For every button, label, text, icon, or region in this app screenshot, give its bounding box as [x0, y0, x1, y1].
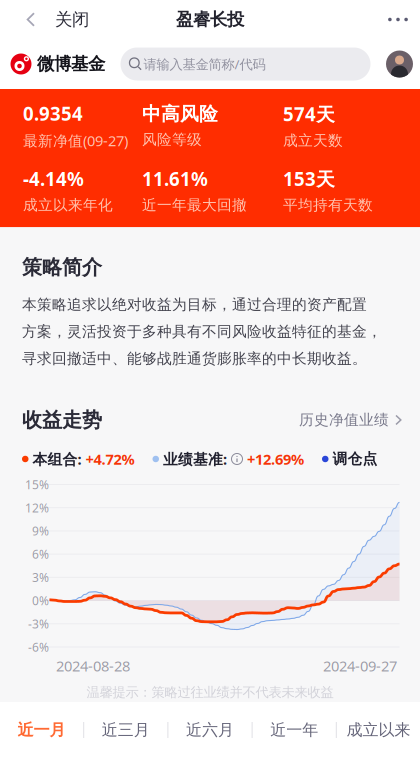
staticText: 寻求回撤适中、能够战胜通货膨胀率的中长期收益。	[22, 350, 367, 368]
staticText: -3%	[28, 616, 49, 632]
staticText: 9%	[32, 523, 49, 539]
staticText: 成立天数	[283, 131, 343, 149]
staticText: 本策略追求以绝对收益为目标，通过合理的资产配置	[22, 296, 367, 314]
staticText: 策略简介	[22, 255, 102, 280]
button[interactable]: 近六月	[168, 702, 252, 758]
button[interactable]: 请输入基金简称/代码	[120, 47, 370, 80]
staticText: 历史净值业绩	[299, 411, 389, 429]
staticText: 2024-09-27	[323, 656, 397, 675]
staticText: 0.9354	[23, 101, 83, 126]
staticText: 近一年	[270, 720, 318, 740]
staticText: 温馨提示：策略过往业绩并不代表未来收益	[86, 684, 333, 700]
staticText: 574天	[283, 102, 335, 126]
staticText: 成立以来	[346, 720, 410, 740]
button[interactable]: 成立以来	[337, 702, 420, 758]
staticText: 关闭	[55, 9, 89, 30]
staticText: 平均持有天数	[283, 196, 373, 214]
staticText: 0%	[32, 593, 49, 608]
staticText: 153天	[283, 166, 335, 191]
staticText: 6%	[32, 546, 49, 562]
staticText: 15%	[25, 476, 49, 492]
staticText: 2024-08-28	[56, 656, 130, 675]
staticText: 请输入基金简称/代码	[143, 55, 265, 73]
button[interactable]: 近一月	[0, 702, 83, 758]
staticText: 近三月	[102, 720, 150, 740]
staticText: 成立以来年化	[23, 196, 113, 214]
staticText: 近一年最大回撤	[142, 196, 247, 214]
staticText: +4.72%	[85, 449, 134, 469]
staticText: 近一月	[18, 720, 66, 740]
staticText: 风险等级	[142, 131, 202, 149]
staticText: 微博基金	[37, 53, 105, 75]
button[interactable]: 个人中心	[386, 50, 413, 77]
staticText: -4.14%	[23, 166, 84, 191]
staticText: 3%	[32, 569, 49, 585]
button[interactable]: 近三月	[84, 702, 167, 758]
staticText: -6%	[28, 639, 49, 655]
staticText: +12.69%	[247, 449, 304, 469]
staticText: 中高风险	[142, 103, 218, 126]
staticText: 近六月	[186, 720, 234, 740]
staticText: 方案，灵活投资于多种具有不同风险收益特征的基金，	[22, 323, 382, 341]
staticText: 盈睿长投	[176, 9, 244, 30]
staticText: 本组合:	[32, 449, 81, 469]
staticText: 业绩基准:	[163, 449, 227, 469]
button[interactable]: 历史净值业绩	[299, 411, 402, 429]
button[interactable]: 关闭	[0, 2, 99, 37]
staticText: 收益走势	[22, 408, 102, 432]
staticText: 最新净值(09-27)	[23, 131, 128, 150]
staticText: 11.61%	[142, 166, 208, 191]
button[interactable]: 近一年	[253, 702, 336, 758]
button[interactable]: 更多	[376, 0, 420, 38]
staticText: 调仓点	[332, 450, 377, 468]
staticText: 12%	[25, 500, 49, 516]
